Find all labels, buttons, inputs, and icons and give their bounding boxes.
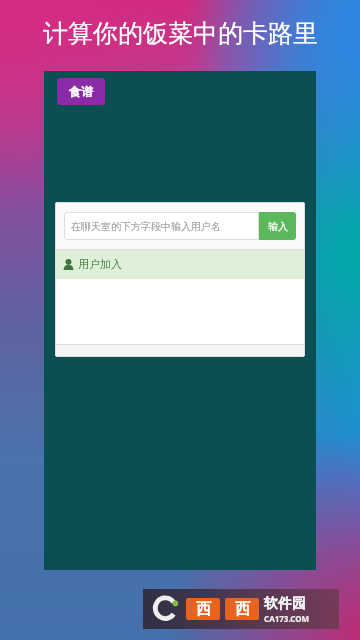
staticText: 西 [235,600,250,619]
staticText: 输入 [268,220,288,233]
button[interactable]: 输入 [259,212,296,240]
staticText: 食谱 [69,84,93,99]
staticText: 计算你的饭菜中的卡路里 [43,18,318,49]
button[interactable]: 食谱 [57,78,105,105]
staticText: 西 [196,600,211,619]
other: User joined [63,259,74,270]
staticText: CA173.COM [264,613,310,624]
staticText: 用户加入 [78,257,122,271]
button[interactable]: User joined [55,250,305,278]
staticText: 在聊天室的下方字段中输入用户名 [71,220,221,233]
button[interactable]: 在聊天室的下方字段中输入用户名 [64,212,259,240]
staticText: 软件园 [264,595,306,613]
